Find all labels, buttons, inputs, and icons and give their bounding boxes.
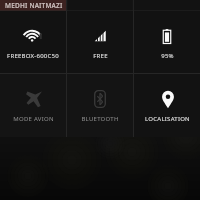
button[interactable]: MEDHI NAITMAZI	[0, 0, 66, 11]
button[interactable]: LOCALISATION	[134, 74, 200, 137]
staticText: MEDHI NAITMAZI	[5, 1, 63, 10]
button[interactable]: FREE	[67, 11, 133, 73]
staticText: LOCALISATION	[145, 115, 190, 123]
staticText: FREEBOX-600C50	[7, 52, 59, 60]
button[interactable]: MODE AVION	[0, 74, 66, 137]
button[interactable]: 95%	[134, 11, 200, 73]
staticText: MODE AVION	[13, 115, 54, 123]
staticText: 95%	[161, 52, 174, 60]
staticText: FREE	[93, 52, 108, 60]
staticText: BLUETOOTH	[81, 115, 119, 123]
button[interactable]: BLUETOOTH	[67, 74, 133, 137]
button[interactable]: FREEBOX-600C50	[0, 11, 66, 73]
